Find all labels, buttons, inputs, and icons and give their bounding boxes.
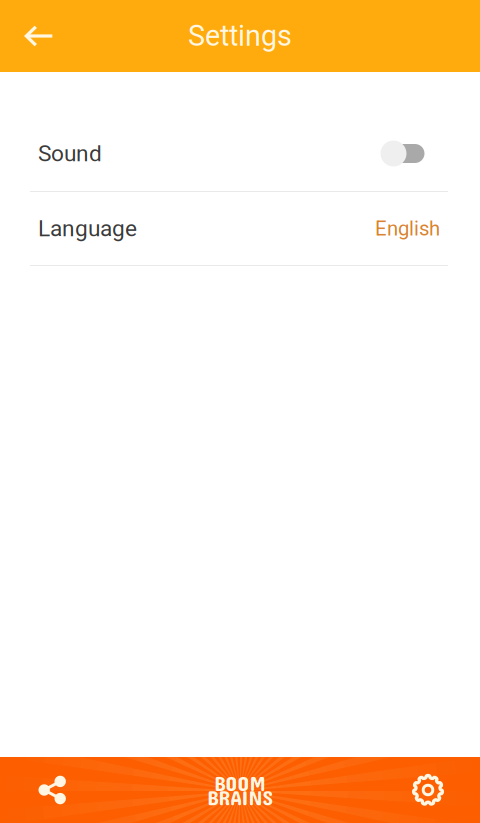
staticText: Settings (188, 19, 292, 53)
button[interactable]: Language (0, 192, 480, 265)
button[interactable]: Back (0, 12, 69, 60)
staticText: Language (38, 215, 137, 242)
staticText: BOOM (214, 770, 265, 795)
staticText: Sound (38, 140, 102, 167)
button[interactable]: Settings (376, 757, 480, 823)
button[interactable]: Share (0, 757, 104, 823)
staticText: BRAINS (207, 785, 272, 810)
staticText: English (375, 217, 440, 240)
button[interactable]: Sound (0, 116, 480, 191)
